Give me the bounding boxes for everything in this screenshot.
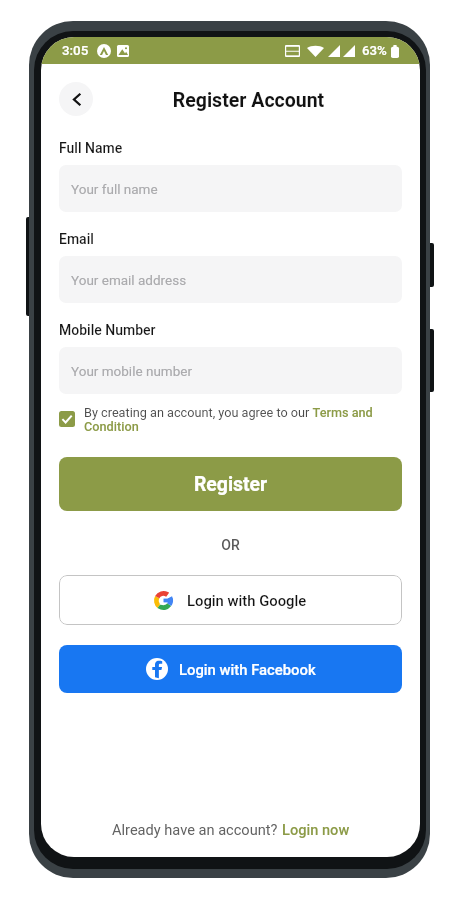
staticText: OR [41,537,420,553]
staticText: Register Account [59,89,420,112]
staticText: By creating an account, you agree to our… [84,405,402,434]
button[interactable]: Register [59,457,402,511]
button[interactable]: Back [59,82,93,116]
button[interactable]: Login with Google [59,575,402,625]
staticText: Register [194,473,268,496]
staticText: Already have an account? [112,821,282,838]
button[interactable]: Login with Facebook [59,645,402,693]
staticText: 63% [362,43,387,59]
staticText: Your mobile number [71,363,192,379]
button[interactable]: Your full name [59,165,402,212]
staticText: Your email address [71,272,187,288]
button[interactable]: Already have an account? [112,821,350,838]
button[interactable]: Your email address [59,256,402,303]
staticText: Email [59,231,94,247]
staticText: Login now [282,821,350,838]
staticText: Full Name [59,140,123,156]
staticText: Mobile Number [59,322,156,338]
staticText: 3:05 [62,43,89,59]
button[interactable]: Your mobile number [59,347,402,394]
staticText: Login with Facebook [179,661,316,678]
button[interactable]: By creating an account, you agree to our… [59,405,402,434]
staticText: Your full name [71,181,158,197]
staticText: Login with Google [187,592,307,609]
